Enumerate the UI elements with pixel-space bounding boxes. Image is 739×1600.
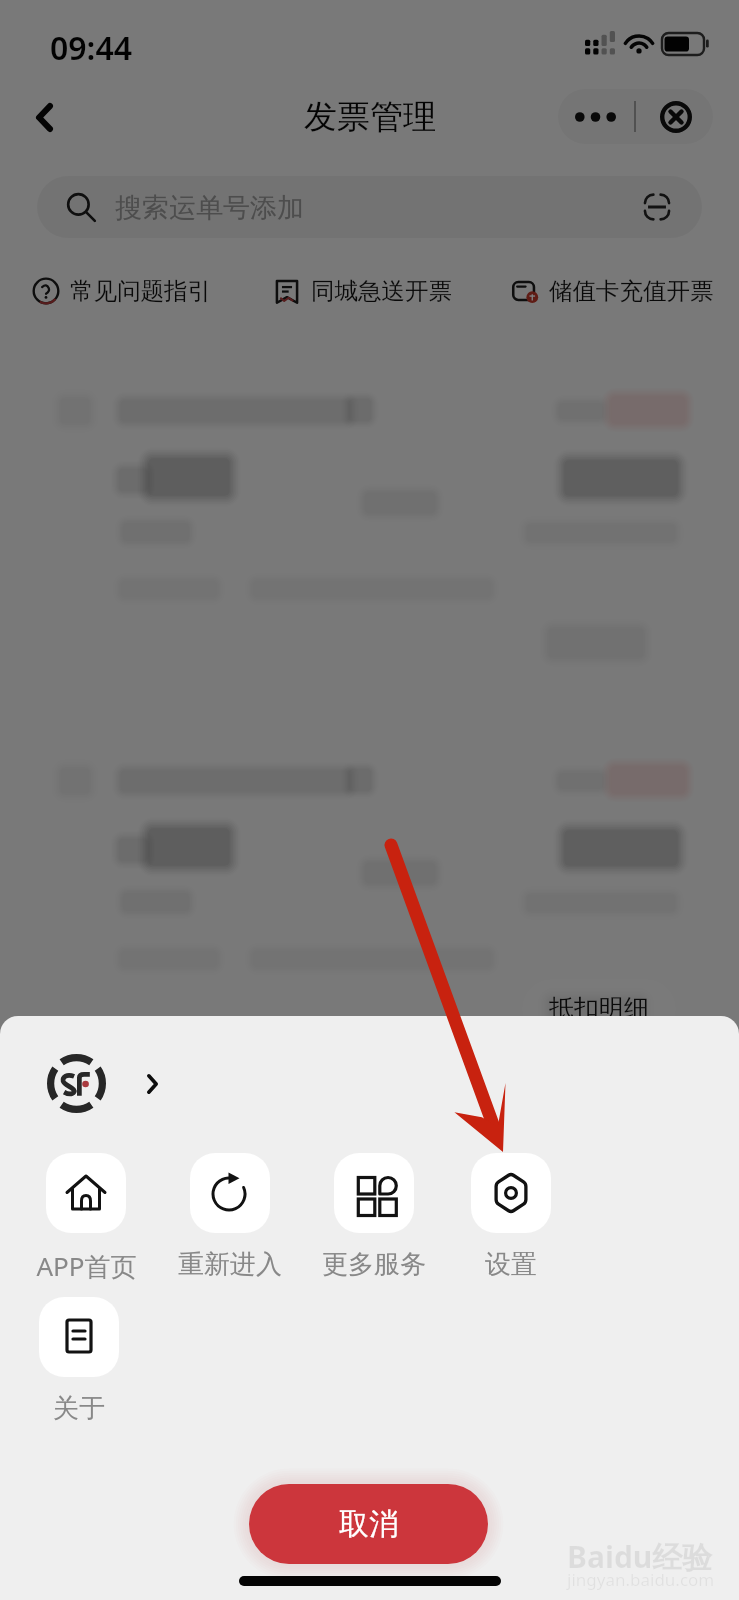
staticText: 取消 xyxy=(339,1505,399,1543)
button[interactable]: 设置 xyxy=(439,1153,583,1281)
staticText: APP首页 xyxy=(36,1248,137,1284)
staticText: 设置 xyxy=(485,1248,537,1281)
button[interactable] xyxy=(47,1054,158,1113)
button[interactable]: 常见问题指引 xyxy=(32,276,211,306)
button[interactable]: 储值卡充值开票 xyxy=(511,276,714,306)
button[interactable]: 取消 xyxy=(249,1484,488,1564)
button[interactable]: 更多服务 xyxy=(302,1153,446,1281)
button[interactable]: Close xyxy=(636,89,713,144)
staticText: 抵扣明细 xyxy=(549,993,649,1024)
staticText: 搜索运单号添加 xyxy=(115,191,304,225)
staticText: jingyan.baidu.com xyxy=(567,1568,715,1591)
staticText: 储值卡充值开票 xyxy=(549,276,714,306)
staticText: 重新进入 xyxy=(178,1248,282,1281)
staticText: 更多服务 xyxy=(322,1248,426,1281)
button[interactable]: APP首页 xyxy=(14,1153,158,1284)
button[interactable]: 同城急送开票 xyxy=(273,276,452,306)
staticText: 09:44 xyxy=(50,26,133,70)
staticText: 发票管理 xyxy=(304,96,436,138)
staticText: 关于 xyxy=(53,1392,105,1425)
button[interactable]: More options xyxy=(558,89,635,144)
button[interactable]: 重新进入 xyxy=(158,1153,302,1281)
button[interactable]: 搜索运单号添加 xyxy=(37,176,702,238)
staticText: 常见问题指引 xyxy=(70,276,211,306)
button[interactable]: 抵扣明细 xyxy=(522,979,676,1039)
button[interactable]: Back xyxy=(16,88,70,146)
staticText: Baidu经验 xyxy=(567,1536,713,1577)
button[interactable]: 关于 xyxy=(7,1297,151,1425)
staticText: 同城急送开票 xyxy=(311,276,452,306)
